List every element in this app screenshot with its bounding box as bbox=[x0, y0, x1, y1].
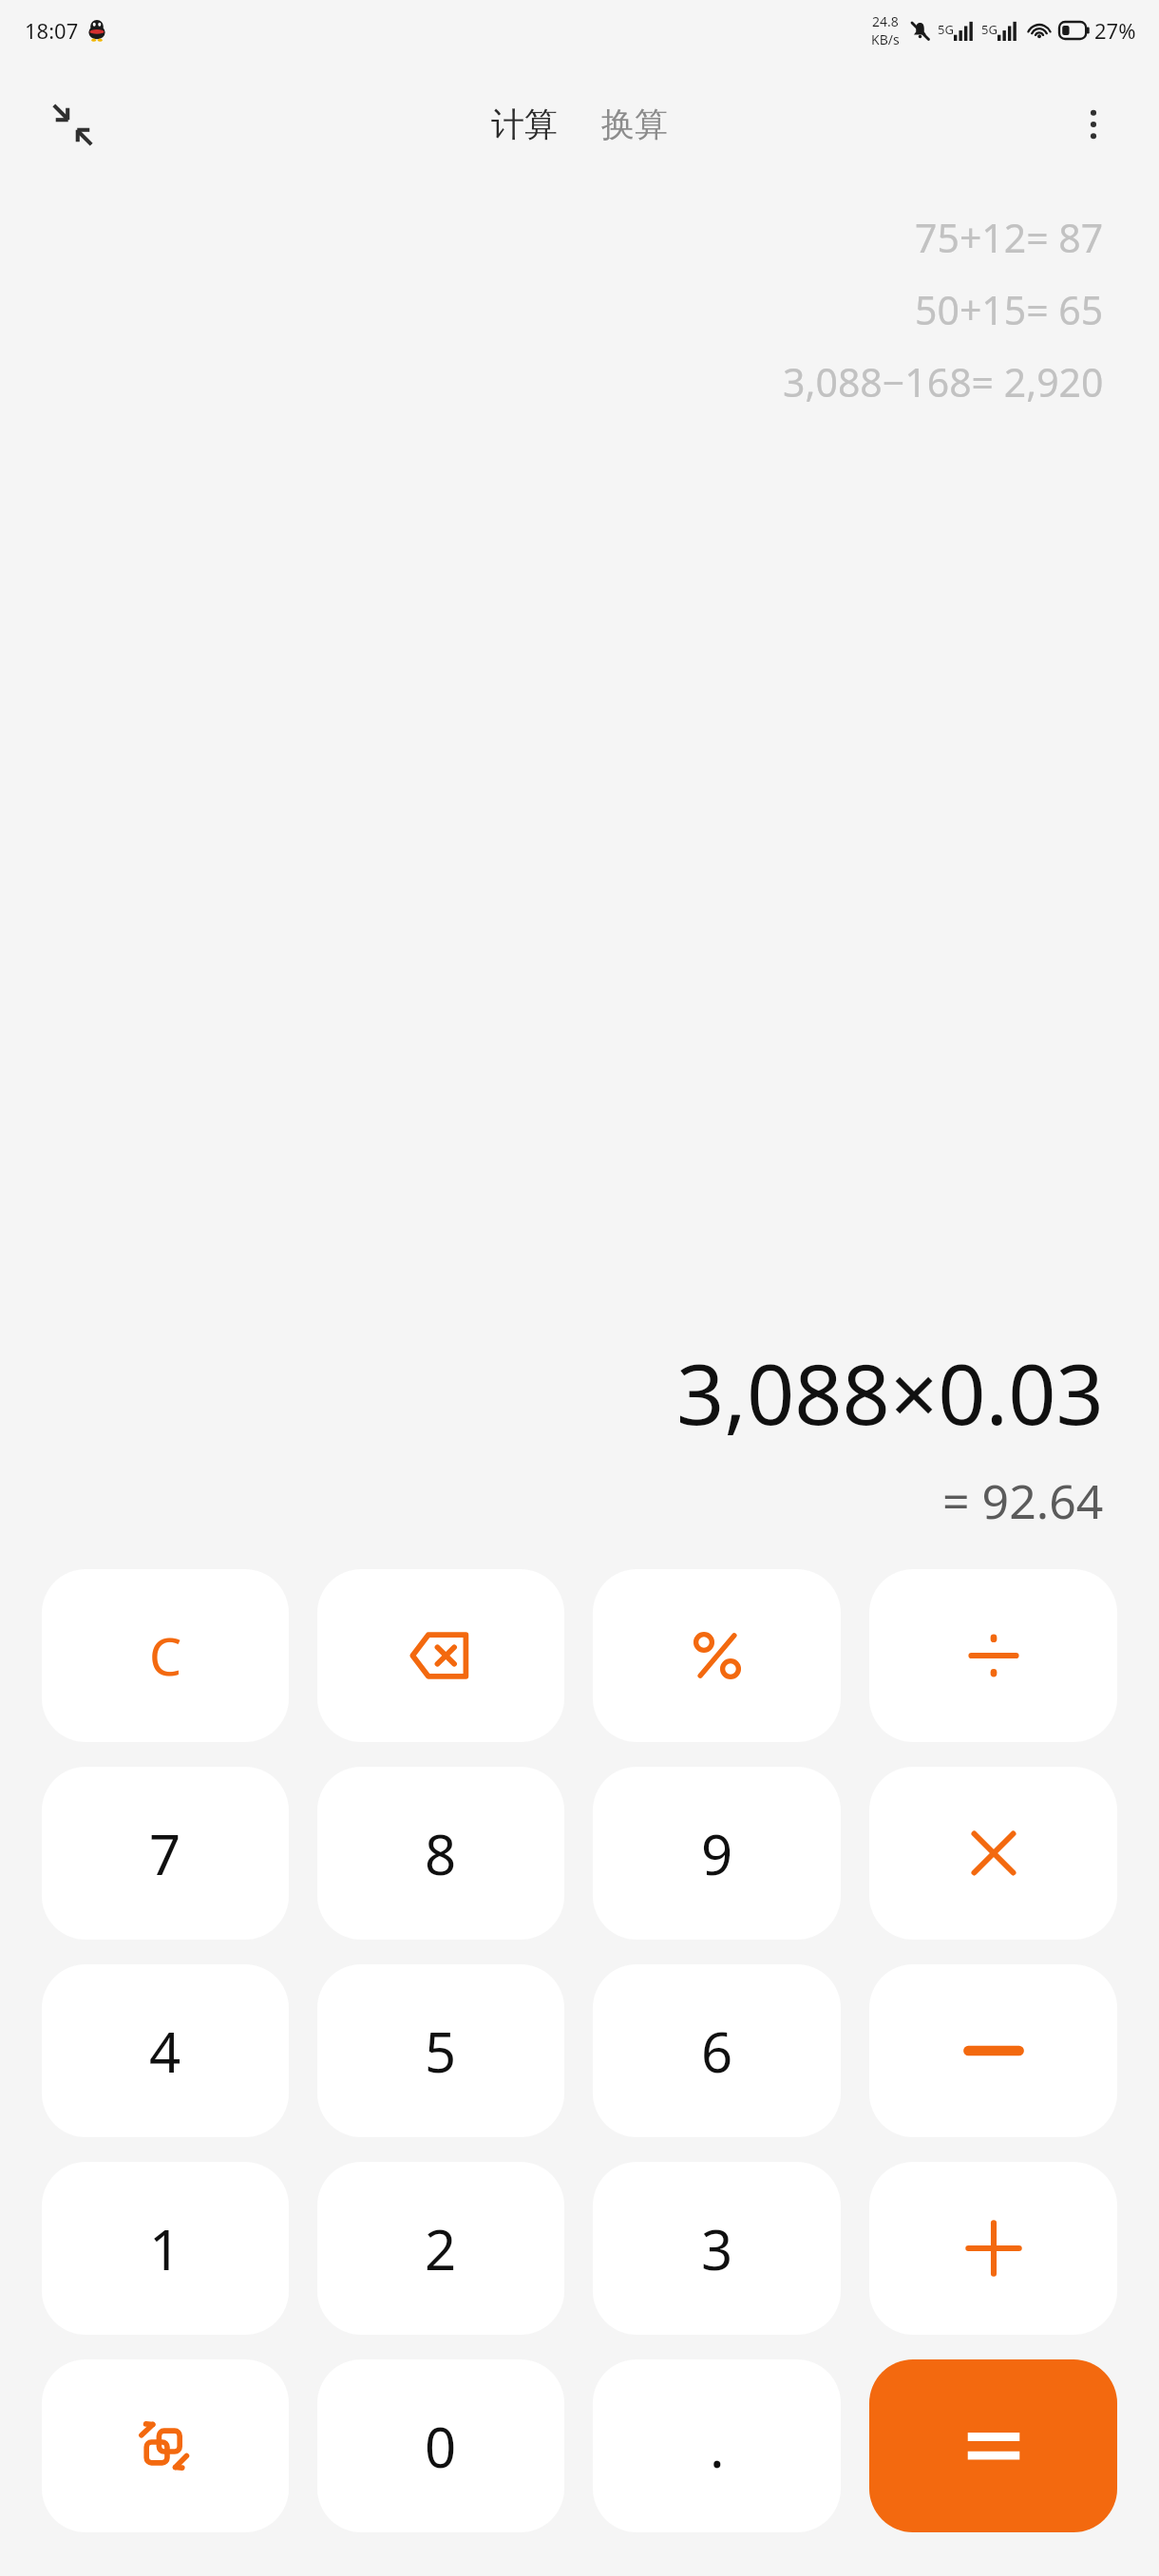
button[interactable]: Plus bbox=[869, 2162, 1117, 2335]
staticText: 27% bbox=[1094, 16, 1136, 45]
button[interactable]: Convert units bbox=[42, 2359, 289, 2532]
button[interactable]: Minus bbox=[869, 1964, 1117, 2137]
staticText: 75+12= 87 bbox=[915, 211, 1104, 264]
staticText: 换算 bbox=[601, 104, 668, 145]
staticText: 8 bbox=[425, 1816, 457, 1891]
staticText: 3,088×0.03 bbox=[676, 1335, 1104, 1449]
button[interactable]: 计算 bbox=[478, 92, 571, 157]
staticText: 9 bbox=[701, 1816, 733, 1891]
staticText: 2 bbox=[425, 2211, 457, 2286]
button[interactable]: Divide bbox=[869, 1569, 1117, 1742]
button[interactable]: 0 bbox=[317, 2359, 564, 2532]
staticText: . bbox=[710, 2409, 725, 2484]
button[interactable]: 7 bbox=[42, 1767, 289, 1940]
staticText: 4 bbox=[149, 2014, 181, 2089]
staticText: = 92.64 bbox=[942, 1468, 1104, 1533]
button[interactable]: 4 bbox=[42, 1964, 289, 2137]
button[interactable]: 5 bbox=[317, 1964, 564, 2137]
button[interactable]: 6 bbox=[593, 1964, 841, 2137]
button[interactable]: 50+15= 65 bbox=[915, 283, 1104, 336]
staticText: 6 bbox=[701, 2014, 733, 2089]
staticText: 1 bbox=[149, 2211, 181, 2286]
button[interactable]: 1 bbox=[42, 2162, 289, 2335]
button[interactable]: 3 bbox=[593, 2162, 841, 2335]
button[interactable]: C bbox=[42, 1569, 289, 1742]
staticText: 24.8 bbox=[872, 12, 899, 30]
button[interactable]: 2 bbox=[317, 2162, 564, 2335]
button[interactable]: Multiply bbox=[869, 1767, 1117, 1940]
staticText: 18:07 bbox=[25, 16, 79, 45]
button[interactable]: 9 bbox=[593, 1767, 841, 1940]
staticText: KB/s bbox=[871, 30, 900, 48]
staticText: 50+15= 65 bbox=[915, 283, 1104, 336]
button[interactable]: Backspace bbox=[317, 1569, 564, 1742]
staticText: 5G bbox=[981, 21, 997, 38]
button[interactable]: . bbox=[593, 2359, 841, 2532]
staticText: 0 bbox=[425, 2409, 457, 2484]
button[interactable]: More options bbox=[1060, 91, 1127, 158]
button[interactable]: 75+12= 87 bbox=[915, 211, 1104, 264]
button[interactable]: 8 bbox=[317, 1767, 564, 1940]
staticText: 3,088−168= 2,920 bbox=[783, 355, 1104, 408]
staticText: 5G bbox=[938, 21, 954, 38]
button[interactable]: Percent bbox=[593, 1569, 841, 1742]
staticText: 3 bbox=[701, 2211, 733, 2286]
button[interactable]: 3,088−168= 2,920 bbox=[783, 355, 1104, 408]
button[interactable]: Equals bbox=[869, 2359, 1117, 2532]
staticText: 7 bbox=[149, 1816, 181, 1891]
staticText: 5 bbox=[425, 2014, 457, 2089]
staticText: 计算 bbox=[491, 104, 558, 145]
staticText: C bbox=[149, 1620, 182, 1691]
button[interactable]: 换算 bbox=[588, 92, 681, 157]
button[interactable]: Collapse bbox=[36, 88, 108, 161]
